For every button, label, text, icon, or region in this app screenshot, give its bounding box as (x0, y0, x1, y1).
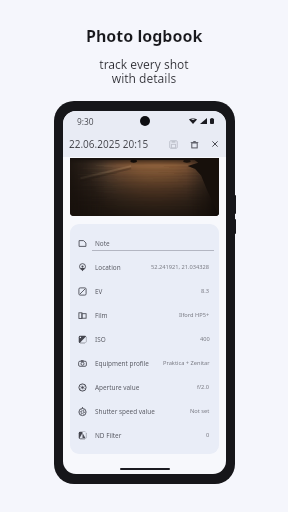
staticText: Location (95, 263, 121, 272)
button[interactable]: ISO (70, 327, 219, 351)
button[interactable]: Delete (187, 137, 201, 151)
button[interactable]: Close (208, 137, 222, 151)
staticText: track every shot with details (99, 56, 189, 86)
staticText: Film (95, 311, 108, 320)
staticText: Equipment profile (95, 359, 149, 368)
staticText: f/2.0 (197, 383, 210, 391)
button[interactable]: Film (70, 303, 219, 327)
button[interactable]: Location (70, 255, 219, 279)
staticText: 22.06.2025 20:15 (69, 137, 149, 151)
staticText: Shutter speed value (95, 407, 155, 416)
staticText: Not set (190, 407, 210, 415)
staticText: ND Filter (95, 431, 122, 440)
button[interactable]: Aperture value (70, 375, 219, 399)
staticText: 0 (206, 431, 210, 439)
button[interactable]: Shutter speed value (70, 399, 219, 423)
staticText: 8.3 (201, 287, 210, 295)
staticText: Note (95, 239, 110, 248)
button[interactable]: Equipment profile (70, 351, 219, 375)
staticText: 400 (200, 335, 210, 343)
button[interactable]: Save (166, 137, 180, 151)
button[interactable]: ND Filter (70, 423, 219, 447)
staticText: 9:30 (77, 116, 94, 127)
button[interactable]: EV (70, 279, 219, 303)
button[interactable]: Note (70, 231, 219, 255)
staticText: Ilford HP5+ (179, 311, 210, 319)
staticText: EV (95, 287, 103, 296)
staticText: Aperture value (95, 383, 140, 392)
staticText: ISO (95, 335, 106, 344)
staticText: Praktica + Zenitar (163, 359, 210, 367)
staticText: 52.241921, 21.034328 (151, 263, 210, 271)
staticText: Photo logbook (86, 25, 203, 47)
